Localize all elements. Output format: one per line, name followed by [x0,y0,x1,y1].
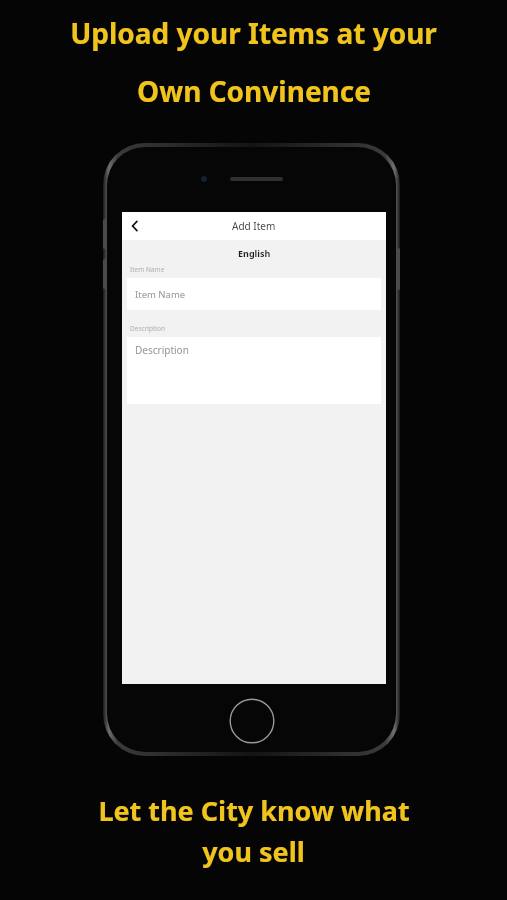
staticText: English [238,247,271,259]
button[interactable]: Description [127,337,381,404]
staticText: Description [135,343,189,357]
button[interactable]: Item Name [127,278,381,310]
staticText: Item Name [135,288,186,301]
staticText: Let the City know what [98,792,410,829]
button[interactable]: Home [229,698,275,744]
staticText: Item Name [130,265,165,274]
staticText: Description [130,324,165,333]
staticText: Upload your Items at your [70,14,437,52]
button[interactable]: English [122,240,386,265]
staticText: Add Item [232,219,276,233]
staticText: you sell [202,833,305,870]
staticText: Own Convinence [137,72,371,110]
button[interactable]: Back [122,213,148,239]
